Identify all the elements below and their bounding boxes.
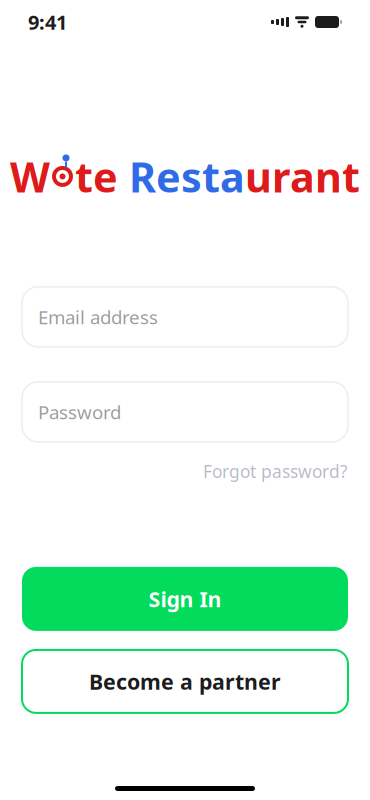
- staticText: Sign In: [148, 585, 221, 613]
- staticText: Become a partner: [89, 667, 281, 695]
- button[interactable]: Become a partner: [22, 650, 348, 713]
- staticText: Email address: [38, 304, 158, 329]
- staticText: Forgot password?: [203, 460, 348, 483]
- staticText: urant: [245, 149, 360, 204]
- staticText: W: [10, 149, 50, 204]
- staticText: Password: [38, 399, 121, 424]
- staticText: Resta: [129, 149, 245, 204]
- button[interactable]: Sign In: [22, 567, 348, 631]
- staticText: 9:41: [28, 9, 67, 35]
- button[interactable]: Forgot password?: [203, 454, 348, 489]
- staticText: te: [75, 149, 118, 204]
